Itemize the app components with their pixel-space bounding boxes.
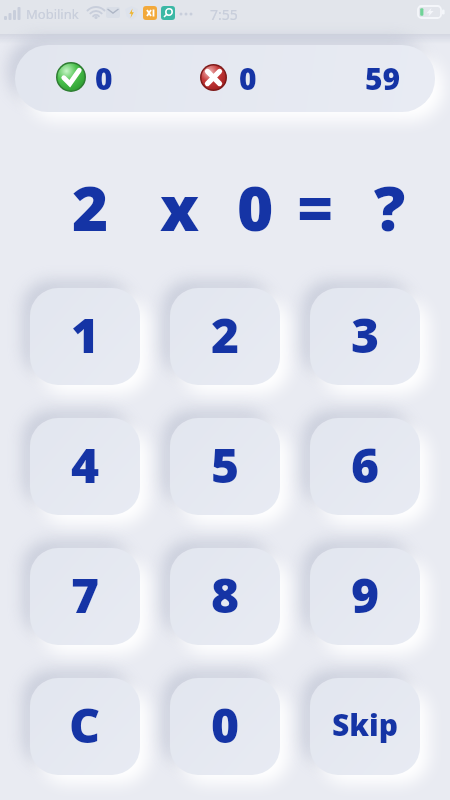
button[interactable]: 4 [30,418,140,515]
staticText: = [297,165,334,249]
button[interactable]: 0 [170,678,280,775]
staticText: 2 [72,165,109,249]
button[interactable]: 1 [30,288,140,385]
staticText: 59 [365,58,401,99]
staticText: 2 [211,302,240,367]
staticText: 0 [211,692,240,757]
button[interactable]: 7 [30,548,140,645]
button[interactable]: 5 [170,418,280,515]
staticText: C [69,692,101,757]
staticText: 8 [211,562,240,627]
button[interactable]: 2 [170,288,280,385]
staticText: 5 [211,432,240,497]
staticText: 7 [71,562,100,627]
staticText: 7:55 [210,5,238,24]
staticText: 3 [351,302,380,367]
staticText: 0 [95,58,113,99]
staticText: Mobilink [26,5,79,23]
button[interactable]: 3 [310,288,420,385]
button[interactable]: 9 [310,548,420,645]
staticText: ? [374,165,406,249]
button[interactable]: 6 [310,418,420,515]
staticText: Skip [332,704,399,745]
staticText: 4 [71,432,100,497]
staticText: 9 [351,562,380,627]
button[interactable]: Skip [310,678,420,775]
staticText: 0 [237,165,274,249]
staticText: x [160,165,200,249]
staticText: 0 [239,58,257,99]
button[interactable]: C [30,678,140,775]
staticText: 1 [71,302,100,367]
button[interactable]: 8 [170,548,280,645]
staticText: 6 [351,432,380,497]
